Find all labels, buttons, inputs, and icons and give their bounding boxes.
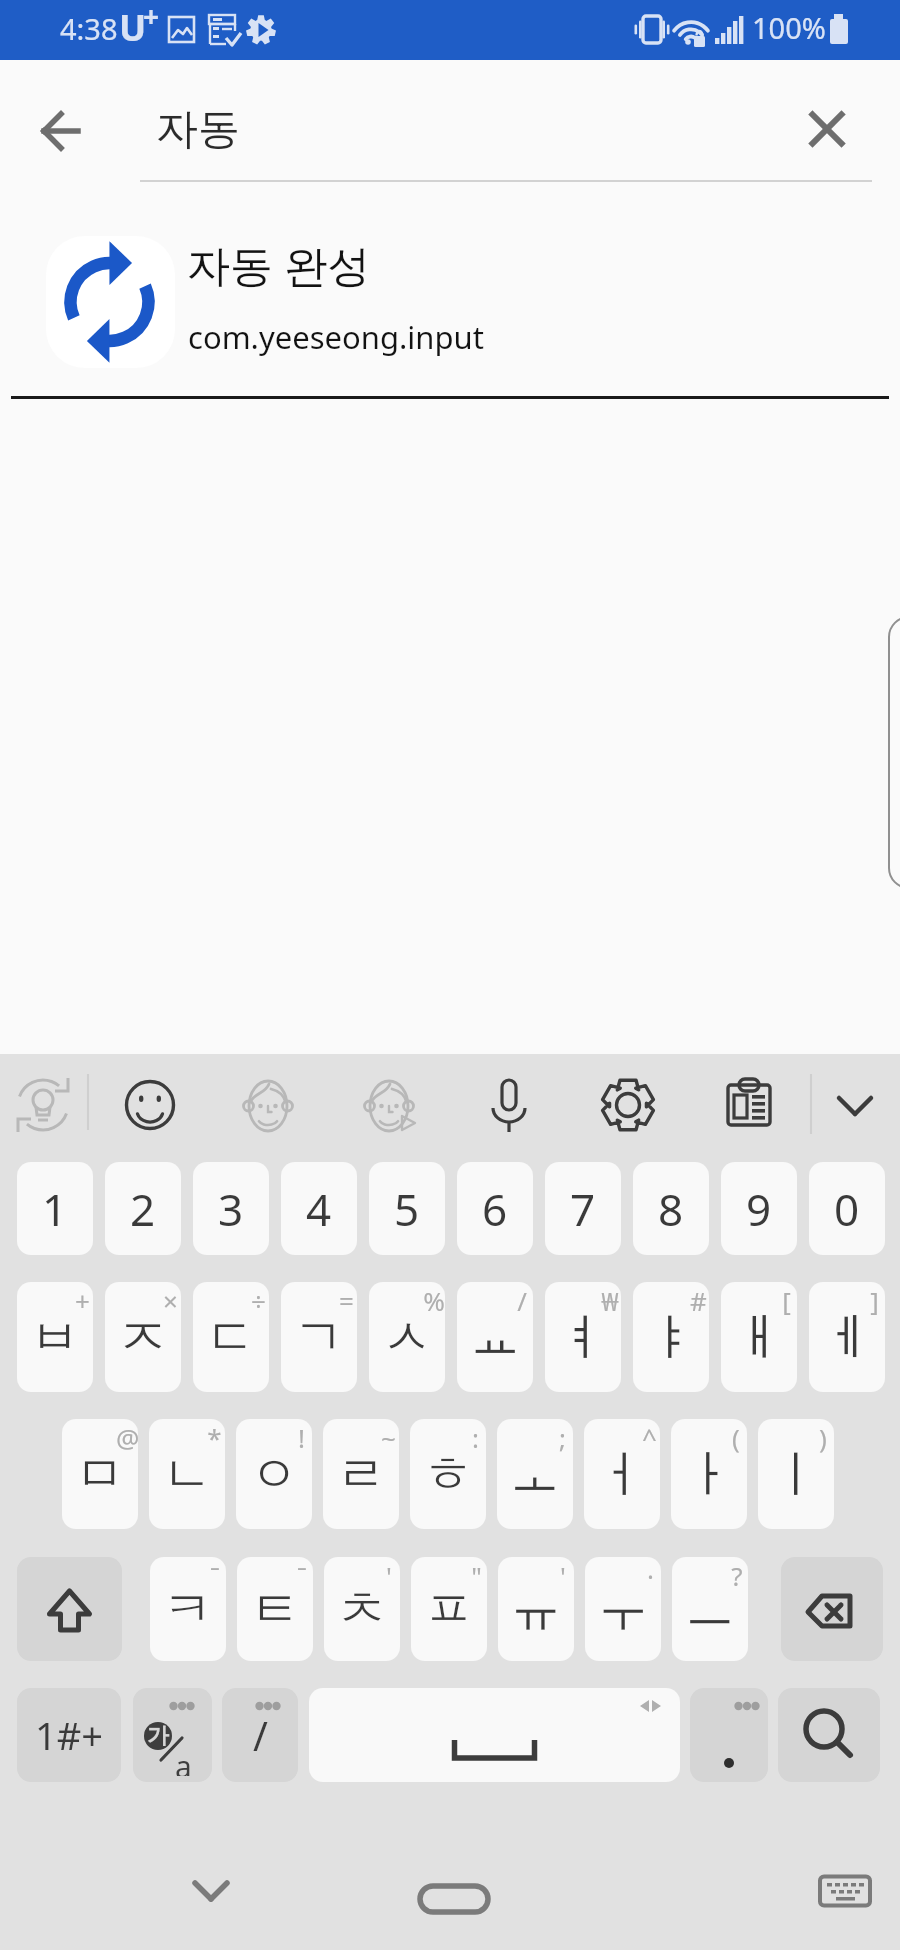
staticText: 5 [394, 1179, 420, 1239]
button[interactable]: ㅓ [584, 1419, 660, 1529]
button[interactable]: 8 [633, 1162, 709, 1255]
staticText: ㅔ [822, 1306, 872, 1369]
staticText: 4 [306, 1179, 332, 1239]
button[interactable]: Period [690, 1688, 768, 1782]
button[interactable]: ㅗ [497, 1419, 573, 1529]
button[interactable]: ㅔ [809, 1282, 885, 1392]
staticText: + [143, 0, 160, 35]
button[interactable]: ㅍ [411, 1557, 487, 1661]
button[interactable]: ㅏ [671, 1419, 747, 1529]
button[interactable]: Emoji [112, 1067, 188, 1143]
button[interactable]: ㅛ [457, 1282, 533, 1392]
button[interactable]: ㅂ [17, 1282, 93, 1392]
staticText: ㄹ [336, 1443, 386, 1506]
staticText: × [163, 1283, 178, 1318]
button[interactable]: ㅌ [237, 1557, 313, 1661]
button[interactable]: 4 [281, 1162, 357, 1255]
button[interactable]: Animated [351, 1067, 427, 1143]
button[interactable]: ㅡ [672, 1557, 748, 1661]
staticText: ㅡ [685, 1578, 735, 1641]
staticText: ㅎ [423, 1443, 473, 1506]
button[interactable]: ㄴ [149, 1419, 225, 1529]
button[interactable]: ㅣ [758, 1419, 834, 1529]
staticText: 4:38 [60, 9, 118, 48]
staticText: ₩ [601, 1283, 619, 1318]
staticText: ㅍ [424, 1578, 474, 1641]
button[interactable]: ㄷ [193, 1282, 269, 1392]
staticText: ) [819, 1420, 827, 1455]
button[interactable]: Hide keyboard [166, 1846, 256, 1936]
staticText: ㅇ [249, 1443, 299, 1506]
staticText: U [119, 3, 147, 52]
button[interactable]: 1#+ [17, 1688, 121, 1782]
button[interactable]: Search [778, 1688, 880, 1782]
staticText: ㅋ [163, 1578, 213, 1641]
button[interactable]: 9 [721, 1162, 797, 1255]
button[interactable]: Change language [133, 1688, 212, 1782]
staticText: % [423, 1283, 445, 1318]
button[interactable]: 1 [17, 1162, 93, 1255]
button[interactable]: ㅇ [236, 1419, 312, 1529]
staticText: 0 [834, 1179, 860, 1239]
staticText: 6 [482, 1179, 508, 1239]
staticText: 2 [130, 1179, 156, 1239]
button[interactable]: Clear [784, 86, 870, 172]
button[interactable]: Back [18, 88, 104, 174]
button[interactable]: ㅈ [105, 1282, 181, 1392]
button[interactable]: Collapse [817, 1067, 893, 1143]
button[interactable]: 7 [545, 1162, 621, 1255]
staticText: " [471, 1558, 482, 1593]
staticText: ( [732, 1420, 740, 1455]
button[interactable]: 자동 완성 [0, 190, 900, 398]
staticText: [ [782, 1283, 791, 1318]
button[interactable]: 6 [457, 1162, 533, 1255]
button[interactable]: 0 [809, 1162, 885, 1255]
button[interactable]: Shift [17, 1557, 122, 1661]
staticText: ㅛ [470, 1306, 520, 1369]
button[interactable]: ㅜ [585, 1557, 661, 1661]
staticText: 8 [658, 1179, 684, 1239]
staticText: : [472, 1420, 479, 1455]
staticText: · [647, 1558, 654, 1593]
button[interactable]: Voice input [471, 1067, 547, 1143]
button[interactable]: ㅑ [633, 1282, 709, 1392]
staticText: ㅌ [250, 1578, 300, 1641]
button[interactable]: Backspace [781, 1557, 883, 1661]
button[interactable]: Settings [590, 1067, 666, 1143]
button[interactable]: ㄱ [281, 1282, 357, 1392]
button[interactable]: 5 [369, 1162, 445, 1255]
button[interactable]: 2 [105, 1162, 181, 1255]
button[interactable]: ㅐ [721, 1282, 797, 1392]
button[interactable]: Suggestions [5, 1067, 81, 1143]
staticText: * [207, 1420, 222, 1455]
staticText: ㅂ [30, 1306, 80, 1369]
button[interactable]: ㅋ [150, 1557, 226, 1661]
button[interactable]: / [222, 1688, 298, 1782]
staticText: ㅈ [118, 1306, 168, 1369]
staticText: ㄷ [206, 1306, 256, 1369]
staticText: ' [386, 1558, 392, 1593]
button[interactable]: ㅠ [498, 1557, 574, 1661]
button[interactable]: ㅕ [545, 1282, 621, 1392]
button[interactable]: ㅅ [369, 1282, 445, 1392]
button[interactable]: ㄹ [323, 1419, 399, 1529]
staticText: 자동 [156, 103, 240, 156]
staticText: / [253, 1708, 268, 1762]
button[interactable]: 3 [193, 1162, 269, 1255]
button[interactable]: Sticker [230, 1067, 306, 1143]
staticText: ^ [642, 1420, 657, 1455]
button[interactable]: ㅁ [62, 1419, 138, 1529]
staticText: / [517, 1283, 527, 1318]
button[interactable]: ㅎ [410, 1419, 486, 1529]
staticText: ÷ [251, 1283, 266, 1318]
staticText: com.yeeseong.input [188, 316, 484, 358]
button[interactable]: Clipboard [711, 1067, 787, 1143]
staticText: ㅓ [597, 1443, 647, 1506]
button[interactable]: Home [409, 1854, 499, 1944]
staticText: ~ [381, 1420, 396, 1455]
button[interactable]: Space [309, 1688, 680, 1782]
staticText: ㅊ [337, 1578, 387, 1641]
button[interactable]: ㅊ [324, 1557, 400, 1661]
staticText: ㄴ [162, 1443, 212, 1506]
button[interactable]: Keyboard [800, 1846, 890, 1936]
